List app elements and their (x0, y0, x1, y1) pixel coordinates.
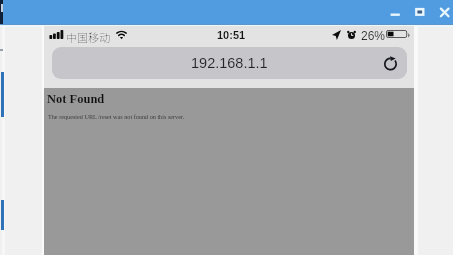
staticText: 192.168.1.1 (191, 55, 268, 71)
staticText: The requested URL /reset was not found o… (48, 113, 185, 120)
button[interactable]: Minimize (384, 2, 406, 22)
staticText: 10:51 (217, 29, 246, 41)
button[interactable]: 192.168.1.1 (52, 47, 407, 79)
staticText: Not Found (47, 92, 105, 106)
staticText: 26% (361, 29, 386, 42)
staticText: 中国移动 (66, 29, 110, 45)
button[interactable]: Maximize (408, 2, 430, 22)
button[interactable]: Close (433, 2, 453, 22)
button[interactable]: Reload page (382, 55, 399, 72)
